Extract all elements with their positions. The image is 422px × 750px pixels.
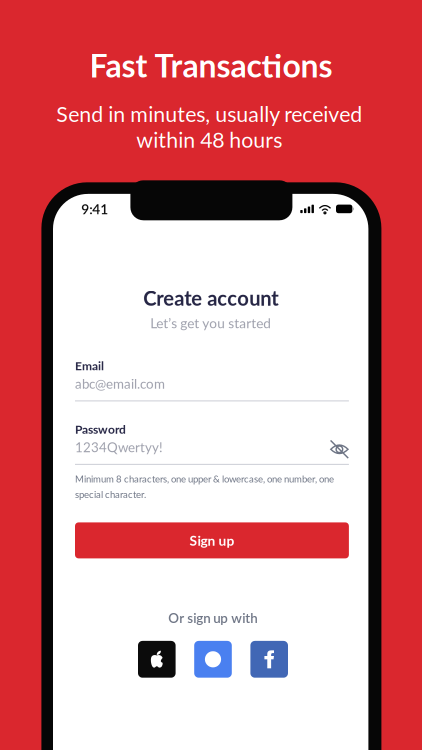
staticText: Sign up xyxy=(189,532,234,549)
staticText: Or sign up with xyxy=(168,610,257,626)
button[interactable]: Show password xyxy=(329,438,350,459)
staticText: Password xyxy=(75,422,126,436)
staticText: 1234Qwertyy! xyxy=(75,439,163,455)
staticText: Create account xyxy=(143,286,278,310)
button[interactable]: Sign up xyxy=(75,522,349,558)
staticText: abc@email.com xyxy=(75,376,165,392)
staticText: Email xyxy=(75,358,104,373)
staticText: Let’s get you started xyxy=(150,315,271,331)
staticText: Send in minutes, usually received within… xyxy=(56,101,362,152)
button[interactable]: Sign up with Google xyxy=(194,641,232,678)
staticText: Minimum 8 characters, one upper & lowerc… xyxy=(75,473,334,500)
staticText: Fast Transactions xyxy=(89,46,332,84)
staticText: 9:41 xyxy=(81,201,108,217)
button[interactable]: Sign up with Facebook xyxy=(250,641,288,678)
button[interactable]: Sign up with Apple xyxy=(138,641,176,678)
